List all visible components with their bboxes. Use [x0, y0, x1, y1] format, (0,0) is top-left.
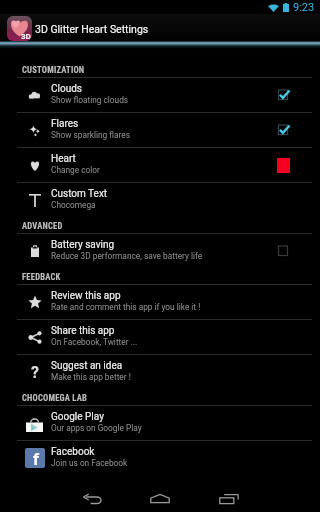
button[interactable]: Home — [140, 494, 180, 512]
staticText: Facebook — [51, 446, 95, 458]
button[interactable]: Custom Text — [0, 183, 320, 217]
button[interactable]: Share this app — [0, 320, 320, 354]
staticText: Google Play — [51, 411, 104, 423]
staticText: ADVANCED — [22, 221, 63, 231]
staticText: f — [33, 449, 40, 468]
staticText: Review this app — [51, 290, 121, 302]
button[interactable]: Flares — [0, 113, 320, 147]
button[interactable]: Google Play — [0, 406, 320, 440]
staticText: 3D Glitter Heart Settings — [35, 23, 149, 35]
staticText: Make this app better ! — [51, 372, 131, 382]
staticText: Flares — [51, 118, 79, 130]
staticText: Show sparkling flares — [51, 130, 130, 140]
staticText: Clouds — [51, 83, 82, 95]
staticText: Custom Text — [51, 188, 108, 200]
button[interactable]: Back — [72, 494, 112, 512]
staticText: 3D — [21, 32, 31, 41]
staticText: Reduce 3D performance, save battery life — [51, 251, 203, 261]
staticText: 9:23 — [293, 1, 315, 14]
staticText: CHOCOMEGA LAB — [22, 393, 88, 403]
staticText: Join us on Facebook — [51, 458, 128, 468]
staticText: FEEDBACK — [22, 272, 61, 282]
staticText: Show floating clouds — [51, 95, 129, 105]
button[interactable]: Recent apps — [209, 494, 249, 512]
button[interactable]: Battery saving — [0, 234, 320, 268]
staticText: Rate and comment this app if you like it… — [51, 302, 201, 312]
button[interactable]: Clouds — [0, 78, 320, 112]
button[interactable]: ? — [0, 355, 320, 389]
button[interactable]: f — [0, 441, 320, 475]
staticText: Chocomega — [51, 200, 96, 210]
staticText: Battery saving — [51, 239, 115, 251]
staticText: Share this app — [51, 325, 115, 337]
staticText: Suggest an idea — [51, 360, 123, 372]
staticText: Our apps on Google Play — [51, 423, 142, 433]
button[interactable]: Review this app — [0, 285, 320, 319]
staticText: On Facebook, Twitter ... — [51, 337, 138, 347]
button[interactable]: Heart — [0, 148, 320, 182]
staticText: ? — [31, 363, 39, 382]
staticText: Change color — [51, 165, 100, 175]
staticText: Heart — [51, 153, 76, 165]
staticText: CUSTOMIZATION — [22, 65, 85, 75]
